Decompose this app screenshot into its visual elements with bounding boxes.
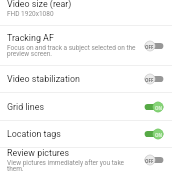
staticText: Video size (rear) xyxy=(7,0,72,9)
button[interactable]: Off xyxy=(144,154,164,166)
button[interactable]: Off xyxy=(144,40,164,52)
button[interactable]: Review pictures xyxy=(0,148,172,172)
button[interactable]: Video size (rear) xyxy=(0,0,172,25)
staticText: OFF xyxy=(145,77,154,83)
button[interactable]: Tracking AF xyxy=(0,26,172,65)
staticText: Grid lines xyxy=(7,102,44,112)
staticText: View pictures immediately after you take… xyxy=(7,159,141,172)
button[interactable]: Off xyxy=(144,73,164,85)
button[interactable]: Grid lines xyxy=(0,93,172,120)
button[interactable]: On xyxy=(144,101,164,113)
button[interactable]: On xyxy=(144,128,164,140)
staticText: ON xyxy=(155,132,163,138)
staticText: Tracking AF xyxy=(7,33,54,43)
staticText: OFF xyxy=(145,44,154,50)
staticText: Video stabilization xyxy=(7,74,80,84)
staticText: FHD 1920x1080 xyxy=(7,10,54,18)
staticText: Review pictures xyxy=(7,148,70,158)
staticText: Focus on and track a subject selected on… xyxy=(7,44,141,58)
button[interactable]: Video stabilization xyxy=(0,66,172,92)
button[interactable]: Location tags xyxy=(0,121,172,147)
staticText: OFF xyxy=(145,158,154,164)
staticText: ON xyxy=(155,105,163,111)
staticText: Location tags xyxy=(7,129,61,139)
